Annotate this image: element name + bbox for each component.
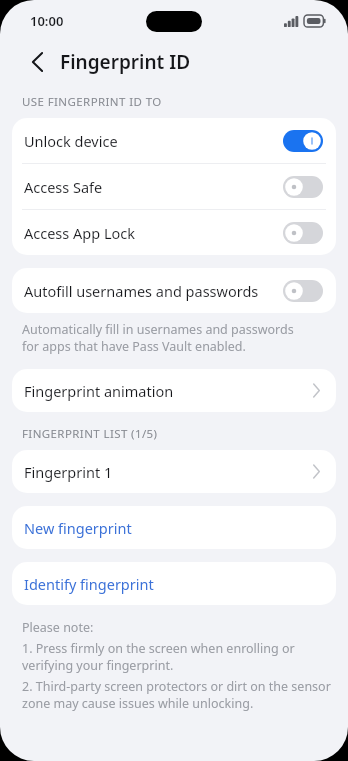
staticText: Unlock device (24, 131, 118, 151)
staticText: 1. Press firmly on the screen when enrol… (22, 640, 334, 674)
button[interactable]: Access App Lock (12, 210, 336, 255)
button[interactable]: Fingerprint animation (12, 369, 336, 412)
staticText: Please note: (22, 619, 94, 636)
staticText: FINGERPRINT LIST (1/5) (22, 426, 158, 442)
button[interactable]: Access Safe (12, 164, 336, 209)
staticText: Automatically fill in usernames and pass… (22, 321, 294, 355)
button[interactable]: New fingerprint (12, 506, 336, 549)
staticText: USE FINGERPRINT ID TO (22, 94, 162, 110)
button[interactable]: Unlock device (12, 118, 336, 163)
button[interactable]: Fingerprint 1 (12, 450, 336, 493)
staticText: 2. Third-party screen protectors or dirt… (22, 678, 334, 712)
staticText: Identify fingerprint (24, 574, 154, 594)
button[interactable]: Autofill usernames and passwords (12, 268, 336, 313)
staticText: Autofill usernames and passwords (24, 281, 259, 301)
staticText: Fingerprint animation (24, 381, 174, 401)
button[interactable]: Back (24, 49, 50, 75)
staticText: Access Safe (24, 177, 103, 197)
staticText: Access App Lock (24, 223, 135, 243)
staticText: New fingerprint (24, 518, 132, 538)
button[interactable]: Identify fingerprint (12, 562, 336, 605)
staticText: 10:00 (30, 12, 64, 30)
staticText: Fingerprint ID (60, 49, 191, 75)
staticText: Fingerprint 1 (24, 462, 113, 482)
